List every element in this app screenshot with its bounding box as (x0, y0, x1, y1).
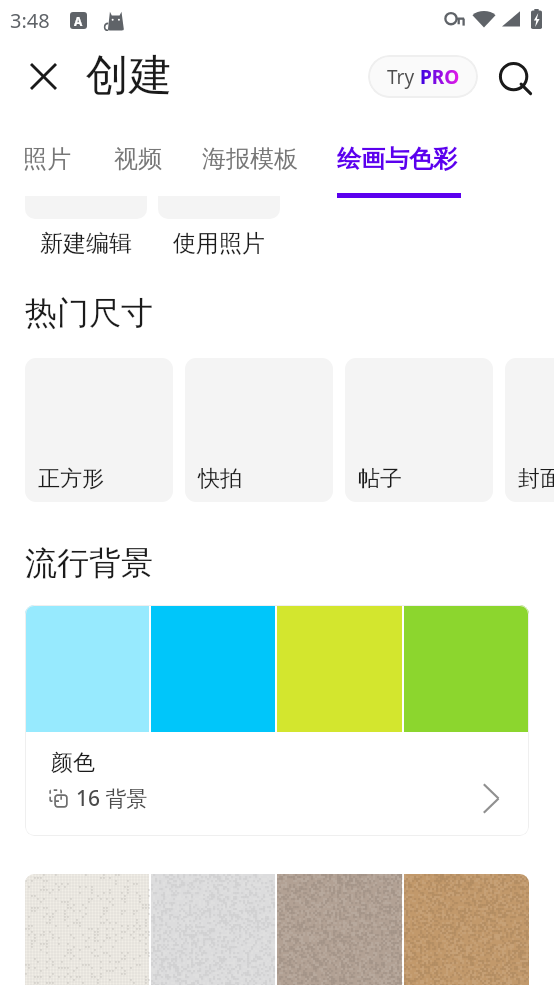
staticText: 创建 (86, 49, 172, 103)
button[interactable]: 颜色 (25, 605, 529, 836)
staticText: Try (387, 64, 420, 90)
button[interactable]: 正方形 (25, 358, 173, 502)
button[interactable]: Try (368, 55, 478, 98)
button[interactable]: 快拍 (185, 358, 333, 502)
button[interactable]: 海报模板 (202, 114, 299, 200)
button[interactable]: 绘画与色彩 (337, 114, 461, 200)
button[interactable]: 照片 (23, 114, 71, 200)
staticText: 使用照片 (173, 229, 265, 258)
staticText: 3:48 (10, 7, 50, 34)
staticText: 新建编辑 (40, 229, 132, 258)
button[interactable]: 封面 (505, 358, 554, 502)
button[interactable]: 新建编辑 (25, 196, 147, 258)
staticText: 快拍 (198, 465, 242, 493)
staticText: A (74, 13, 83, 29)
button[interactable]: Close (19, 52, 67, 100)
staticText: 绘画与色彩 (337, 144, 457, 174)
button[interactable]: 帖子 (345, 358, 493, 502)
staticText: PRO (420, 64, 460, 90)
staticText: 正方形 (38, 465, 104, 493)
button[interactable]: 使用照片 (158, 196, 280, 258)
staticText: 流行背景 (25, 543, 153, 583)
staticText: 封面 (518, 465, 554, 493)
staticText: 热门尺寸 (25, 293, 153, 333)
staticText: 照片 (23, 144, 71, 174)
button[interactable]: 视频 (114, 114, 162, 200)
staticText: 16 背景 (76, 784, 148, 813)
staticText: 海报模板 (202, 144, 298, 174)
staticText: 帖子 (358, 465, 402, 493)
staticText: 颜色 (51, 749, 95, 777)
staticText: 视频 (114, 144, 162, 174)
button[interactable] (25, 874, 529, 985)
button[interactable]: Search (492, 55, 542, 105)
